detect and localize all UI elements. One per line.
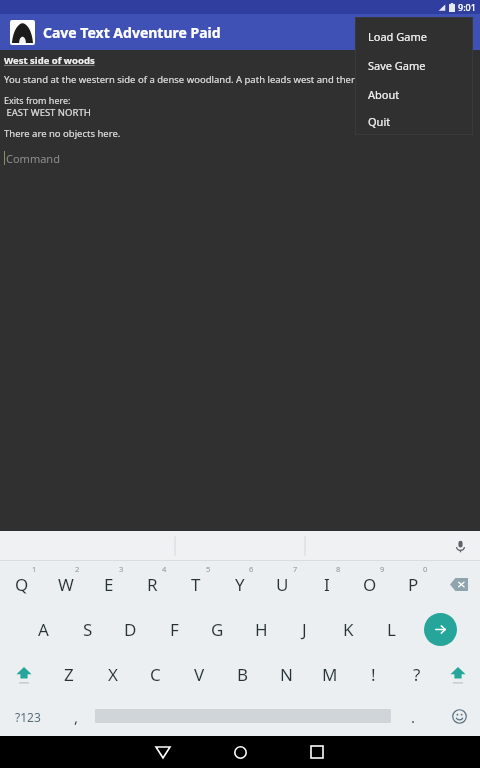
button[interactable]: Emoji	[438, 697, 480, 736]
staticText: A	[38, 618, 49, 641]
staticText: P	[408, 573, 419, 596]
staticText: 5	[206, 564, 211, 574]
staticText: ?	[413, 663, 421, 686]
staticText: K	[343, 618, 354, 641]
staticText: 2	[75, 564, 80, 574]
button[interactable]: Back	[140, 736, 186, 768]
button[interactable]: Q	[0, 561, 43, 607]
staticText: H	[255, 618, 268, 641]
button[interactable]: Z	[47, 652, 90, 697]
button[interactable]: Shift	[436, 652, 480, 697]
staticText: M	[322, 663, 338, 686]
staticText: EAST WEST NORTH	[4, 106, 91, 119]
staticText: About	[368, 87, 400, 102]
staticText: You stand at the western side of a dense…	[4, 73, 442, 86]
staticText: !	[371, 663, 376, 686]
button[interactable]: .	[395, 697, 431, 736]
button[interactable]: P	[392, 561, 435, 607]
staticText: ,	[74, 707, 79, 727]
staticText: X	[108, 663, 118, 686]
button[interactable]: Voice input	[450, 536, 470, 556]
button[interactable]: J	[283, 607, 326, 652]
staticText: L	[387, 618, 396, 641]
button[interactable]: Shift	[2, 652, 46, 697]
staticText: W	[58, 573, 74, 596]
button[interactable]: F	[153, 607, 196, 652]
button[interactable]: Quit	[356, 109, 472, 134]
staticText: 7	[293, 564, 298, 574]
staticText: F	[170, 618, 179, 641]
button[interactable]: Home	[217, 736, 263, 768]
staticText: There are no objects here.	[4, 127, 121, 140]
staticText: Q	[15, 573, 29, 596]
button[interactable]: S	[66, 607, 109, 652]
staticText: I	[324, 573, 330, 596]
staticText: O	[363, 573, 377, 596]
staticText: 0	[423, 564, 428, 574]
staticText: Save Game	[368, 58, 426, 73]
button[interactable]: Y	[218, 561, 261, 607]
staticText: 3	[119, 564, 124, 574]
button[interactable]: !	[352, 652, 395, 697]
staticText: West side of woods	[4, 54, 95, 67]
button[interactable]: K	[327, 607, 370, 652]
button[interactable]: G	[196, 607, 239, 652]
staticText: Cave Text Adventure Paid	[43, 23, 221, 42]
staticText: 4	[162, 564, 167, 574]
button[interactable]: ?	[395, 652, 438, 697]
staticText: U	[276, 573, 289, 596]
staticText: 9	[380, 564, 385, 574]
staticText: .	[411, 707, 416, 727]
staticText: Load Game	[368, 29, 427, 44]
button[interactable]: Save Game	[356, 51, 472, 80]
staticText: Z	[64, 663, 74, 686]
button[interactable]: W	[44, 561, 87, 607]
button[interactable]: ,	[58, 697, 94, 736]
button[interactable]: R	[131, 561, 174, 607]
button[interactable]: T	[174, 561, 217, 607]
staticText: Quit	[368, 114, 391, 129]
button[interactable]: ?123	[0, 697, 56, 736]
button[interactable]: I	[305, 561, 348, 607]
staticText: Command	[6, 151, 60, 166]
button[interactable]: Enter	[424, 613, 457, 646]
staticText: D	[124, 618, 137, 641]
staticText: G	[211, 618, 224, 641]
staticText: 9:01	[458, 1, 476, 13]
staticText: ?123	[15, 709, 41, 725]
button[interactable]: X	[91, 652, 134, 697]
staticText: 1	[32, 564, 37, 574]
staticText: Exits from here:	[4, 94, 71, 106]
staticText: 8	[336, 564, 341, 574]
button[interactable]: H	[240, 607, 283, 652]
button[interactable]: L	[370, 607, 413, 652]
button[interactable]: M	[308, 652, 351, 697]
staticText: B	[237, 663, 249, 686]
button[interactable]: O	[348, 561, 391, 607]
button[interactable]: V	[178, 652, 221, 697]
button[interactable]: Load Game	[356, 22, 472, 51]
button[interactable]: C	[134, 652, 177, 697]
staticText: E	[104, 573, 114, 596]
button[interactable]: D	[109, 607, 152, 652]
button[interactable]: U	[261, 561, 304, 607]
staticText: C	[150, 663, 161, 686]
staticText: S	[83, 618, 93, 641]
button[interactable]: A	[22, 607, 65, 652]
staticText: T	[191, 573, 201, 596]
button[interactable]: Recent apps	[294, 736, 340, 768]
staticText: R	[147, 573, 158, 596]
button[interactable]: E	[87, 561, 130, 607]
staticText: J	[302, 618, 307, 641]
staticText: Y	[235, 573, 245, 596]
button[interactable]: About	[356, 80, 472, 109]
staticText: 6	[249, 564, 254, 574]
staticText: N	[280, 663, 293, 686]
staticText: V	[194, 663, 205, 686]
button[interactable]: N	[265, 652, 308, 697]
button[interactable]: Backspace	[437, 561, 480, 607]
button[interactable]: B	[221, 652, 264, 697]
